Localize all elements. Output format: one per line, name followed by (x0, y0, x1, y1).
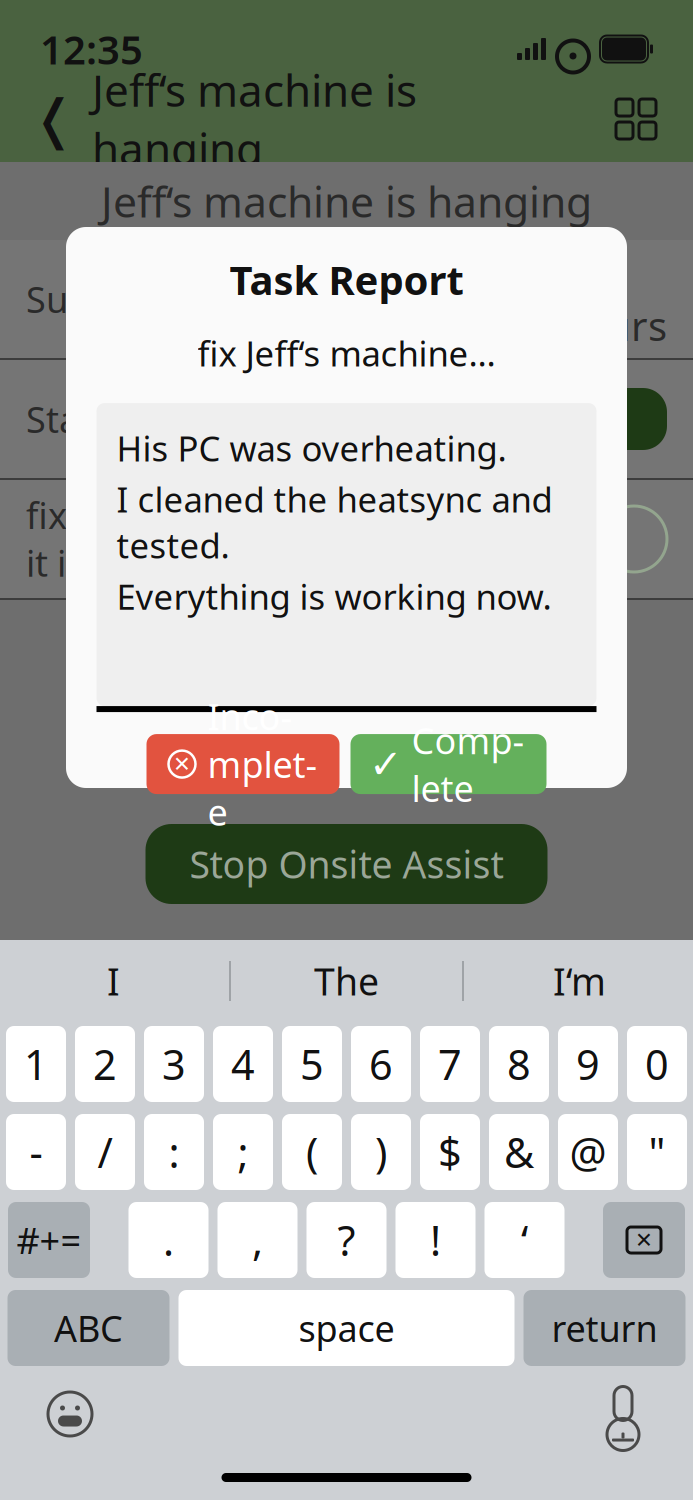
button[interactable]: #+= (8, 1202, 90, 1278)
button[interactable]: 2 (75, 1026, 135, 1102)
button[interactable]: 4 (213, 1026, 273, 1102)
staticText: Task Report (229, 253, 463, 306)
button[interactable]: - (6, 1114, 66, 1190)
staticText: ABC (54, 1304, 123, 1352)
staticText: I (107, 956, 120, 1006)
button[interactable]: space (178, 1290, 514, 1366)
staticText: 8 (507, 1037, 531, 1091)
staticText: ! (430, 1213, 441, 1267)
staticText: His PC was overheating. (116, 425, 506, 471)
staticText: $ (438, 1125, 462, 1179)
button[interactable]: / (75, 1114, 135, 1190)
staticText: & (504, 1125, 534, 1179)
button[interactable]: 7 (420, 1026, 480, 1102)
button[interactable]: 9 (558, 1026, 618, 1102)
staticText: : (168, 1125, 179, 1179)
button[interactable]: ! (395, 1202, 475, 1278)
staticText: / (97, 1125, 112, 1179)
button[interactable]: $ (420, 1114, 480, 1190)
staticText: ✓ (369, 741, 403, 787)
staticText: 9 (576, 1037, 600, 1091)
button[interactable]: 8 (489, 1026, 549, 1102)
button[interactable]: . (128, 1202, 208, 1278)
staticText: fix Jeff‘s machine... (197, 330, 495, 376)
staticText: ✕ (635, 1228, 653, 1252)
staticText: 6 (369, 1037, 393, 1091)
button[interactable]: ( (282, 1114, 342, 1190)
button[interactable]: @ (558, 1114, 618, 1190)
button[interactable]: The (231, 940, 462, 1022)
staticText: ? (337, 1213, 355, 1267)
button[interactable]: Back (26, 88, 82, 150)
button[interactable]: & (489, 1114, 549, 1190)
staticText: ❬ (31, 89, 76, 149)
button[interactable]: ✓ (350, 734, 546, 794)
button[interactable]: Grid view (605, 88, 667, 150)
staticText: ‘ (521, 1213, 528, 1267)
staticText: " (648, 1125, 665, 1179)
staticText: ; (237, 1125, 248, 1179)
button[interactable]: Dictation (593, 1384, 653, 1444)
staticText: space (298, 1304, 394, 1352)
button[interactable]: " (627, 1114, 687, 1190)
button[interactable]: 3 (144, 1026, 204, 1102)
button[interactable]: I (0, 940, 229, 1022)
staticText: I cleaned the heatsync and tested. (116, 476, 552, 568)
button[interactable]: 6 (351, 1026, 411, 1102)
staticText: ( (306, 1125, 318, 1179)
button[interactable]: 0 (627, 1026, 687, 1102)
staticText: 30 hours (557, 246, 667, 352)
staticText: 1 (24, 1037, 48, 1091)
button[interactable]: : (144, 1114, 204, 1190)
button[interactable]: ; (213, 1114, 273, 1190)
staticText: Status (26, 395, 131, 443)
staticText: Complete (411, 716, 524, 812)
staticText: @ (569, 1125, 606, 1179)
button[interactable]: Delete (603, 1202, 685, 1278)
button[interactable]: 5 (282, 1026, 342, 1102)
staticText: 7 (438, 1037, 462, 1091)
staticText: Summary (26, 275, 189, 323)
staticText: fix Jeff‘s machine... it isn‘t working (26, 491, 336, 587)
staticText: #+= (16, 1216, 81, 1264)
button[interactable]: I‘m (464, 940, 693, 1022)
button[interactable]: 1 (6, 1026, 66, 1102)
staticText: 3 (162, 1037, 186, 1091)
button[interactable]: Emoji (40, 1384, 100, 1444)
staticText: Everything is working now. (116, 573, 551, 619)
button[interactable]: ? (306, 1202, 386, 1278)
staticText: Jeff‘s machine is hanging (101, 173, 592, 229)
staticText: 0 (645, 1037, 669, 1091)
staticText: , (252, 1213, 263, 1267)
button[interactable]: ) (351, 1114, 411, 1190)
staticText: return (551, 1304, 657, 1352)
staticText: ) (375, 1125, 387, 1179)
staticText: 5 (300, 1037, 324, 1091)
button[interactable]: ABC (7, 1290, 169, 1366)
staticText: The (314, 956, 379, 1006)
staticText: 12:35 (40, 22, 143, 75)
button[interactable]: , (217, 1202, 297, 1278)
button[interactable]: return (523, 1290, 685, 1366)
button[interactable]: ‘ (484, 1202, 564, 1278)
button[interactable]: ✕ (146, 734, 339, 794)
staticText: 4 (231, 1037, 255, 1091)
staticText: Stop Onsite Assist (189, 839, 503, 889)
staticText: Jeff‘s machine is hanging (92, 61, 417, 177)
staticText: Incomplete (207, 692, 317, 836)
button[interactable]: Stop Onsite Assist (145, 824, 547, 904)
staticText: . (163, 1213, 174, 1267)
staticText: - (29, 1125, 42, 1179)
staticText: I‘m (553, 956, 606, 1006)
staticText: ✕ (173, 752, 191, 776)
staticText: 2 (93, 1037, 117, 1091)
